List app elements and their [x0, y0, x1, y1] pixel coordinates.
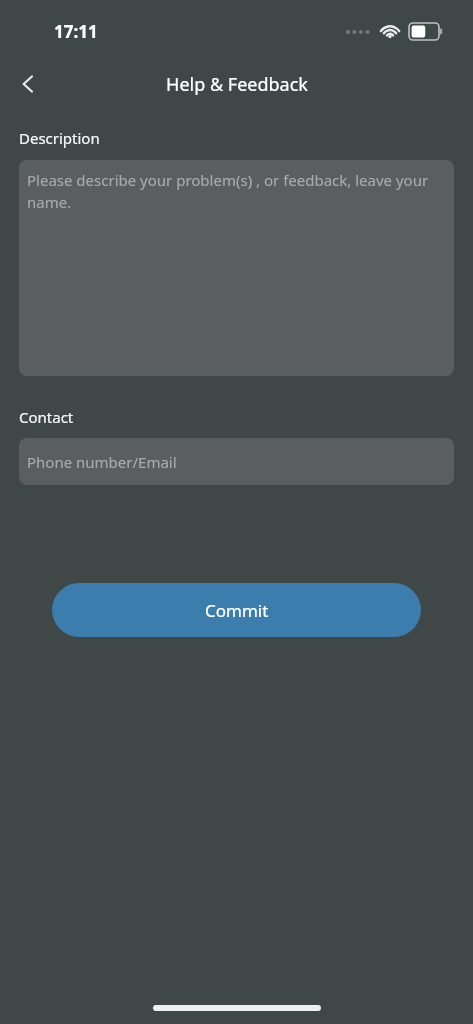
button[interactable]: Commit [52, 583, 421, 637]
staticText: Commit [205, 599, 269, 622]
staticText: Help & Feedback [166, 72, 308, 97]
staticText: Please describe your problem(s) , or fee… [27, 170, 444, 213]
staticText: 17:11 [54, 20, 98, 43]
staticText: Description [19, 128, 100, 148]
button[interactable]: Please describe your problem(s) , or fee… [19, 160, 454, 376]
staticText: Contact [19, 407, 74, 427]
staticText: Phone number/Email [27, 452, 177, 472]
button[interactable]: Phone number/Email [19, 438, 454, 485]
button[interactable]: Back [4, 60, 52, 108]
